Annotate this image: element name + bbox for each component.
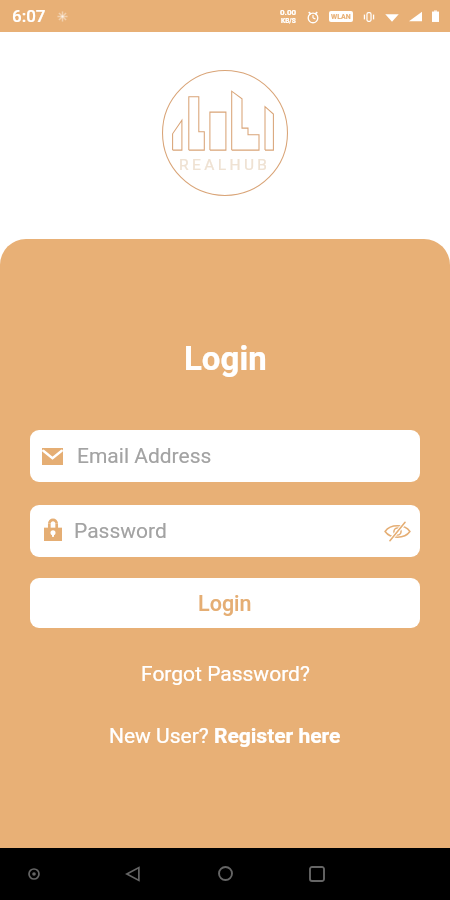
button[interactable]: Login: [30, 578, 420, 628]
staticText: Login: [198, 591, 252, 616]
staticText: WLAN: [331, 13, 351, 21]
button[interactable]: Assistant: [17, 857, 50, 890]
staticText: 0.00: [280, 8, 297, 17]
button[interactable]: Recents: [300, 857, 333, 890]
staticText: KB/S: [281, 17, 296, 25]
staticText: New User?: [109, 724, 214, 749]
button[interactable]: Email Address: [30, 430, 420, 482]
button[interactable]: Forgot Password?: [135, 658, 316, 691]
button[interactable]: Home: [209, 857, 242, 890]
staticText: REALHUB: [179, 156, 271, 174]
staticText: Password: [74, 519, 167, 544]
button[interactable]: Show password: [382, 516, 412, 546]
staticText: Forgot Password?: [141, 662, 310, 687]
button[interactable]: New User?: [103, 720, 347, 753]
staticText: Register here: [214, 724, 341, 749]
staticText: 6:07: [12, 6, 46, 26]
staticText: Email Address: [77, 444, 212, 469]
staticText: Login: [184, 339, 267, 378]
button[interactable]: Password: [30, 505, 420, 557]
button[interactable]: Back: [116, 857, 149, 890]
